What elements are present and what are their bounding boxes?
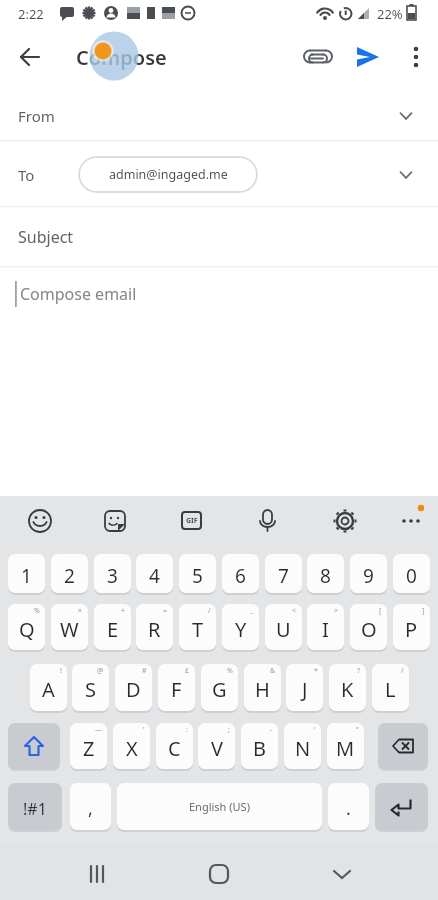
staticText: % bbox=[34, 606, 40, 616]
button[interactable]: 0 bbox=[393, 554, 430, 593]
staticText: ‘ bbox=[314, 725, 316, 735]
staticText: 1 bbox=[21, 563, 32, 589]
button[interactable]: J bbox=[286, 664, 323, 711]
button[interactable]: U bbox=[265, 604, 302, 650]
button[interactable]: P bbox=[393, 604, 430, 650]
button[interactable]: , bbox=[70, 783, 111, 830]
button[interactable]: Z bbox=[70, 723, 107, 769]
button[interactable]: 7 bbox=[265, 554, 302, 593]
button[interactable]: C bbox=[156, 723, 193, 769]
staticText: From bbox=[18, 106, 55, 126]
staticText: Y bbox=[235, 616, 247, 643]
button[interactable] bbox=[8, 723, 60, 769]
button[interactable] bbox=[375, 783, 428, 830]
button[interactable]: N bbox=[284, 723, 321, 769]
button[interactable]: 3 bbox=[94, 554, 131, 593]
button[interactable]: E bbox=[94, 604, 131, 650]
button[interactable]: H bbox=[244, 664, 281, 711]
staticText: & bbox=[270, 666, 276, 676]
button[interactable]: 1 bbox=[8, 554, 45, 593]
staticText: P bbox=[405, 616, 418, 643]
staticText: 3 bbox=[107, 563, 118, 589]
button[interactable]: 4 bbox=[136, 554, 173, 593]
staticText: S bbox=[85, 676, 96, 703]
staticText: Compose bbox=[76, 44, 167, 71]
button[interactable]: D bbox=[115, 664, 152, 711]
button[interactable]: GIF bbox=[181, 511, 202, 530]
staticText: ’ bbox=[143, 725, 145, 735]
button[interactable] bbox=[378, 723, 428, 769]
button[interactable]: . bbox=[328, 783, 369, 830]
staticText: Subject bbox=[18, 226, 74, 248]
button[interactable] bbox=[320, 852, 364, 896]
button[interactable]: A bbox=[30, 664, 67, 711]
staticText: E bbox=[107, 616, 119, 643]
staticText: Compose email bbox=[20, 283, 137, 305]
button[interactable]: Q bbox=[8, 604, 45, 650]
button[interactable]: F bbox=[158, 664, 195, 711]
button[interactable]: K bbox=[329, 664, 366, 711]
staticText: F bbox=[171, 676, 182, 703]
staticText: admin@ingaged.me bbox=[109, 166, 228, 183]
button[interactable]: Y bbox=[222, 604, 259, 650]
staticText: 2 bbox=[64, 563, 75, 589]
staticText: 5 bbox=[192, 563, 203, 589]
staticText: . bbox=[346, 796, 351, 821]
button[interactable] bbox=[0, 88, 438, 140]
staticText: : bbox=[186, 725, 188, 735]
button[interactable] bbox=[75, 852, 119, 896]
button[interactable] bbox=[398, 39, 434, 75]
staticText: X bbox=[126, 735, 138, 762]
button[interactable]: L bbox=[372, 664, 409, 711]
button[interactable]: R bbox=[136, 604, 173, 650]
staticText: / bbox=[401, 666, 404, 676]
button[interactable]: G bbox=[201, 664, 238, 711]
button[interactable] bbox=[12, 39, 48, 75]
button[interactable]: M bbox=[327, 723, 364, 769]
staticText: = bbox=[163, 606, 168, 616]
staticText: / bbox=[208, 606, 211, 616]
staticText: I bbox=[322, 616, 329, 643]
staticText: 4 bbox=[149, 563, 160, 589]
button[interactable] bbox=[350, 39, 386, 75]
staticText: — bbox=[95, 725, 102, 735]
button[interactable]: V bbox=[198, 723, 235, 769]
staticText: Z bbox=[83, 735, 95, 762]
button[interactable] bbox=[0, 268, 438, 368]
staticText: English (US) bbox=[189, 799, 250, 814]
staticText: T bbox=[192, 616, 204, 643]
button[interactable]: !#1 bbox=[8, 783, 62, 830]
button[interactable]: 9 bbox=[350, 554, 387, 593]
staticText: [ bbox=[379, 606, 382, 616]
staticText: @ bbox=[97, 666, 104, 676]
button[interactable]: O bbox=[350, 604, 387, 650]
button[interactable]: X bbox=[113, 723, 150, 769]
staticText: C bbox=[168, 735, 181, 762]
staticText: ! bbox=[60, 666, 62, 676]
staticText: U bbox=[276, 616, 291, 643]
staticText: × bbox=[78, 606, 83, 616]
button[interactable]: English (US) bbox=[117, 783, 322, 830]
button[interactable]: T bbox=[179, 604, 216, 650]
button[interactable] bbox=[197, 852, 241, 896]
staticText: !#1 bbox=[23, 798, 47, 820]
staticText: ; bbox=[228, 725, 230, 735]
button[interactable]: 2 bbox=[51, 554, 88, 593]
button[interactable] bbox=[300, 39, 336, 75]
staticText: % bbox=[227, 666, 233, 676]
staticText: + bbox=[121, 606, 126, 616]
button[interactable]: admin@ingaged.me bbox=[78, 156, 258, 193]
button[interactable]: I bbox=[307, 604, 344, 650]
staticText: R bbox=[148, 616, 161, 643]
button[interactable]: 8 bbox=[307, 554, 344, 593]
staticText: M bbox=[336, 735, 355, 762]
button[interactable]: 5 bbox=[179, 554, 216, 593]
button[interactable]: S bbox=[72, 664, 109, 711]
staticText: GIF bbox=[186, 516, 198, 526]
button[interactable]: 6 bbox=[222, 554, 259, 593]
button[interactable]: B bbox=[241, 723, 278, 769]
staticText: 22% bbox=[377, 5, 403, 23]
button[interactable]: W bbox=[51, 604, 88, 650]
button[interactable] bbox=[0, 208, 438, 266]
staticText: 7 bbox=[278, 563, 289, 589]
